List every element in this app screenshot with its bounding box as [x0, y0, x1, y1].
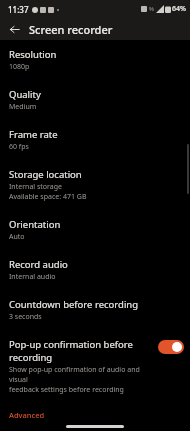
staticText: Pop-up confirmation before recording [9, 338, 155, 364]
staticText: 60 fps [9, 142, 29, 152]
staticText: Quality [9, 88, 41, 101]
button[interactable]: Back [4, 19, 24, 39]
button[interactable]: Advanced [0, 403, 190, 422]
button[interactable]: Countdown before recording [0, 290, 190, 330]
staticText: Storage location [9, 168, 82, 181]
button[interactable]: Storage location [0, 160, 190, 210]
staticText: 64% [172, 4, 186, 14]
staticText: Orientation [9, 218, 61, 231]
button[interactable]: Frame rate [0, 120, 190, 160]
staticText: Screen recorder [29, 22, 113, 37]
staticText: Record audio [9, 258, 68, 271]
staticText: Frame rate [9, 128, 58, 141]
button[interactable]: Pop-up confirmation before recording [0, 330, 190, 403]
staticText: feedback settings before recording [9, 385, 124, 395]
staticText: Internal storage [9, 182, 62, 192]
staticText: 11:37 [8, 4, 29, 15]
button[interactable]: Quality [0, 80, 190, 120]
staticText: Resolution [9, 48, 57, 61]
button[interactable]: Switch on [158, 340, 184, 354]
staticText: Available space: 471 GB [9, 192, 87, 202]
staticText: 1080p [9, 62, 30, 72]
button[interactable]: Orientation [0, 210, 190, 250]
staticText: % [149, 5, 154, 13]
button[interactable]: Record audio [0, 250, 190, 290]
staticText: Show pop-up confirmation of audio and vi… [9, 365, 155, 385]
staticText: Medium [9, 102, 37, 112]
staticText: Advanced [9, 410, 45, 420]
button[interactable]: Resolution [0, 40, 190, 80]
staticText: Auto [9, 232, 25, 242]
staticText: Internal audio [9, 272, 56, 282]
staticText: 3 seconds [9, 312, 42, 322]
staticText: Countdown before recording [9, 298, 139, 311]
